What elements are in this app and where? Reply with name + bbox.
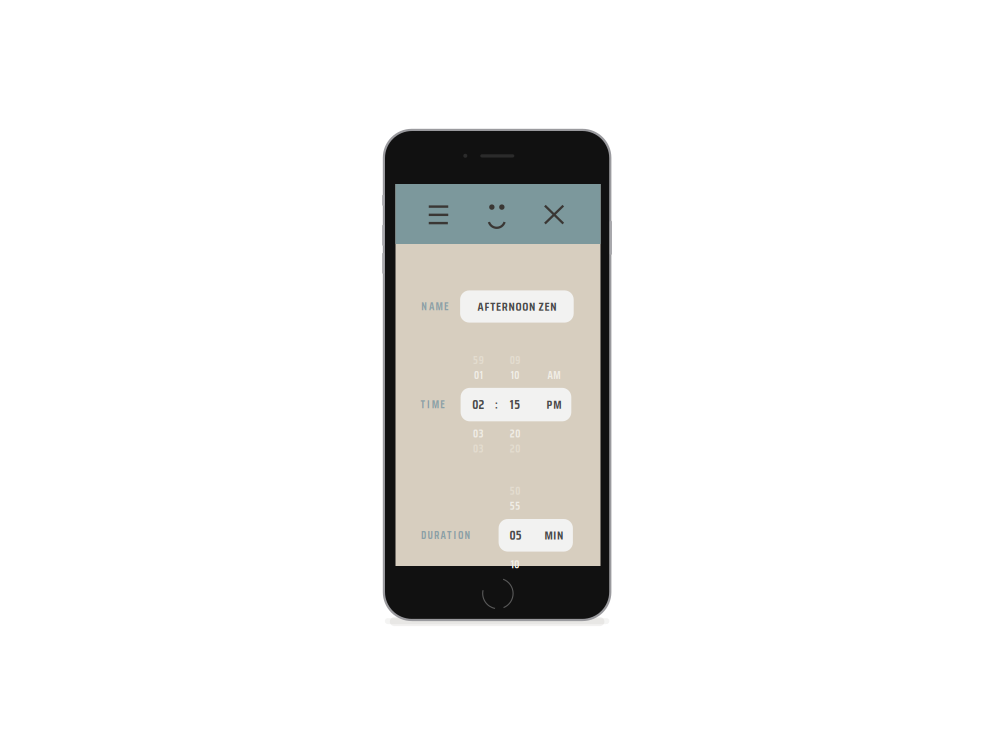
staticText: DURATION	[421, 527, 470, 544]
staticText: 03	[473, 425, 484, 442]
staticText: AFTERNOON ZEN	[478, 297, 556, 316]
button[interactable]: AFTERNOON ZEN	[460, 290, 574, 323]
button[interactable]: Mood	[470, 186, 524, 246]
staticText: 20	[510, 425, 520, 442]
staticText: 15	[510, 395, 520, 414]
staticText: 10	[511, 556, 519, 573]
staticText: 05	[510, 525, 522, 545]
staticText: 50	[510, 483, 520, 499]
staticText: 59	[473, 352, 484, 369]
staticText: TIME	[420, 396, 445, 413]
staticText: MIN	[544, 526, 563, 545]
button[interactable]: Close	[527, 185, 581, 245]
staticText: AM	[547, 367, 560, 384]
button[interactable]	[499, 519, 573, 552]
staticText: 20	[510, 440, 520, 457]
staticText: NAME	[421, 298, 449, 315]
staticText: 09	[510, 352, 520, 369]
staticText: :	[495, 396, 498, 413]
staticText: PM	[546, 395, 561, 414]
staticText: 02	[472, 395, 485, 414]
staticText: 55	[510, 498, 520, 514]
button[interactable]: Menu	[411, 185, 465, 245]
staticText: 03	[473, 440, 484, 457]
staticText: 10	[511, 367, 519, 384]
button[interactable]	[461, 388, 571, 421]
staticText: 01	[474, 367, 483, 384]
